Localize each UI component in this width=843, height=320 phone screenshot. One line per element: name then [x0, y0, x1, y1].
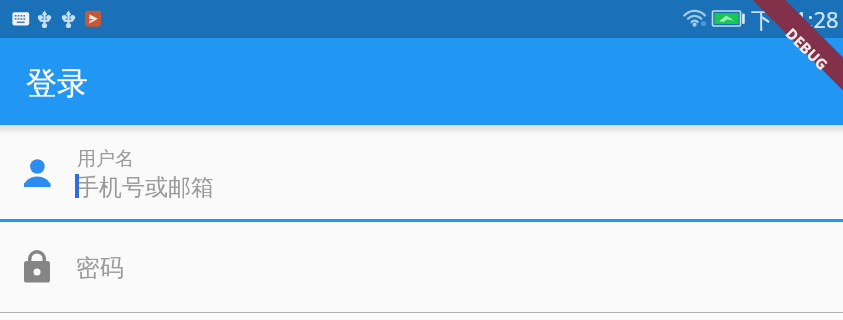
staticText: DEBUG: [775, 15, 841, 81]
staticText: 手机号或邮箱: [76, 173, 214, 202]
button[interactable]: User: [0, 125, 843, 222]
staticText: 用户名: [77, 147, 134, 171]
staticText: 下午1:28: [751, 4, 839, 34]
button[interactable]: 登录: [0, 38, 843, 125]
staticText: 登录: [26, 64, 88, 103]
button[interactable]: Password: [0, 222, 843, 315]
staticText: 密码: [76, 253, 124, 283]
other: User: [0, 125, 843, 222]
other: Password: [0, 222, 843, 315]
